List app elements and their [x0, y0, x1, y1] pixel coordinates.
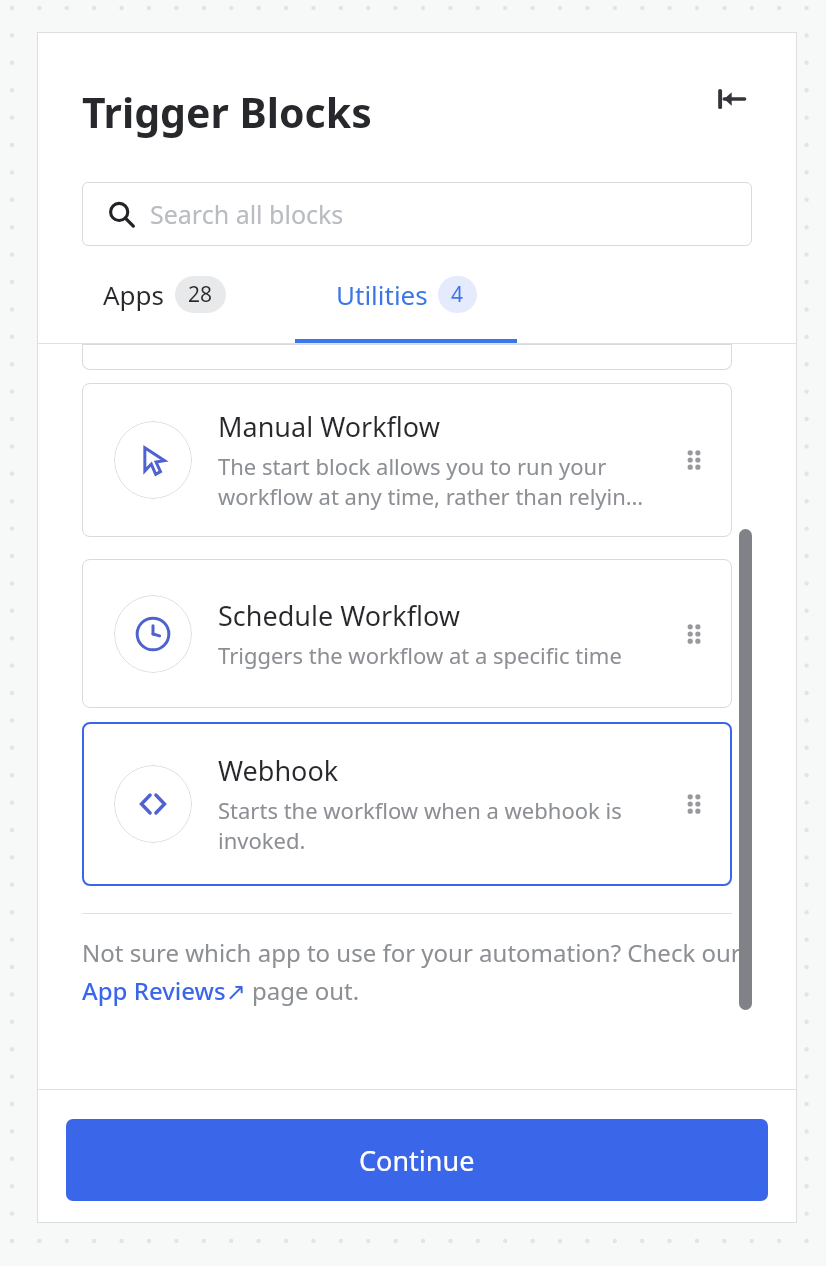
button[interactable]: Drag to reorder — [672, 611, 718, 657]
button[interactable]: Manual Workflow — [82, 383, 732, 537]
staticText: Utilities — [336, 277, 428, 312]
staticText: 4 — [451, 280, 464, 309]
staticText: Not sure which app to use for your autom… — [82, 936, 769, 1007]
staticText: Manual Workflow — [218, 408, 440, 445]
staticText: Search all blocks — [150, 197, 344, 231]
button[interactable]: Search all blocks — [82, 182, 752, 246]
staticText: Triggers the workflow at a specific time — [218, 640, 622, 670]
button[interactable]: Continue — [66, 1119, 768, 1201]
staticText: Webhook — [218, 752, 339, 789]
staticText: The start block allows you to run your w… — [218, 451, 644, 512]
button[interactable]: Collapse panel — [707, 75, 755, 123]
staticText: Schedule Workflow — [218, 597, 460, 634]
staticText: Apps — [103, 277, 165, 312]
staticText: Trigger Blocks — [82, 84, 372, 140]
button[interactable]: Apps — [82, 276, 247, 343]
button[interactable]: Drag to reorder — [672, 781, 718, 827]
button[interactable]: Utilities — [295, 276, 517, 343]
button[interactable]: Drag to reorder — [672, 437, 718, 483]
staticText: Starts the workflow when a webhook is in… — [218, 795, 622, 856]
button[interactable]: Schedule Workflow — [82, 559, 732, 708]
button[interactable]: Webhook — [82, 722, 732, 886]
staticText: 28 — [188, 280, 213, 309]
staticText: Continue — [359, 1142, 475, 1179]
button[interactable] — [82, 344, 732, 370]
